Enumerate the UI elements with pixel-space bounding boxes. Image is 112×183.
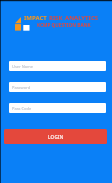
- staticText: LOGIN: [48, 134, 64, 140]
- button[interactable]: User Name: [9, 61, 106, 71]
- staticText: IMPACT: [24, 14, 49, 22]
- button[interactable]: Pass Code: [9, 103, 106, 113]
- staticText: ANALYTICS: [65, 14, 99, 22]
- staticText: Pass Code: [12, 106, 32, 111]
- staticText: User Name: [12, 64, 34, 69]
- staticText: RISK: [49, 14, 65, 22]
- button[interactable]: Password: [9, 82, 106, 92]
- staticText: Password: [12, 85, 31, 90]
- button[interactable]: LOGIN: [4, 129, 107, 144]
- staticText: KCMP QUESTION BANK: [37, 22, 91, 28]
